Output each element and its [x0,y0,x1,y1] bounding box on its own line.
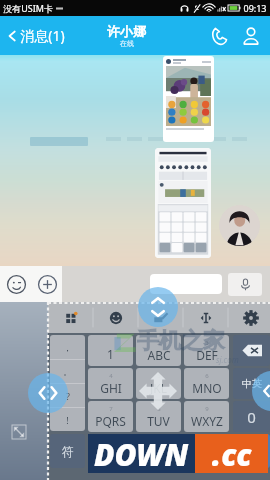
staticText: sj.com [216,354,239,365]
staticText: 1 [107,346,114,362]
staticText: 消息(1) [20,26,65,45]
button[interactable]: Send [233,434,270,468]
staticText: ABC [147,347,171,363]
button[interactable]: 8 [136,401,181,432]
button[interactable] [150,274,222,294]
button[interactable]: 7 [88,401,133,432]
staticText: ? [66,390,70,402]
button[interactable]: Scroll up and down [138,287,178,327]
button[interactable]: 3 [184,335,229,366]
button[interactable]: Apps [48,302,93,333]
button[interactable]: Cursor pad [183,302,228,333]
button[interactable]: Call [206,23,232,49]
button[interactable]: 符 [50,434,85,468]
staticText: 符 [62,444,74,459]
staticText: 0 [247,407,256,427]
staticText: 中英 [242,377,262,390]
staticText: 3 [205,339,209,347]
staticText: PQRS [95,413,126,429]
staticText: DOWN [94,434,189,473]
button[interactable] [163,56,214,142]
staticText: 没有USIM卡 [3,2,53,14]
button[interactable]: Move cursor left or right [28,373,68,413]
button[interactable]: Contact profile [238,23,264,49]
staticText: TUV [147,413,170,429]
staticText: 4 [109,372,113,380]
button[interactable]: Move keyboard [139,372,177,410]
button[interactable]: Emoji [5,273,27,295]
button[interactable]: 4 [88,368,133,399]
staticText: GHI [100,380,122,396]
button[interactable]: ， [50,335,85,431]
button[interactable]: 0 [233,401,270,432]
button[interactable]: 中英 [233,368,270,399]
button[interactable]: 2 [136,335,181,366]
button[interactable]: Previous [252,371,270,411]
button[interactable]: Emoji [93,302,138,333]
button[interactable]: 9 [184,401,229,432]
staticText: WXYZ [191,413,223,429]
staticText: 5 [157,372,161,380]
button[interactable]: 5 [136,368,181,399]
button[interactable]: Space [136,434,181,468]
staticText: 7 [109,405,113,413]
button[interactable]: Enter [184,434,229,468]
button[interactable]: 1 [88,335,133,366]
staticText: 。 [63,366,72,377]
staticText: 12# [100,443,122,459]
button[interactable]: 12# [88,434,133,468]
staticText: .cc [212,434,252,473]
staticText: 8 [157,405,161,413]
button[interactable]: Voice message [228,273,262,296]
button[interactable]: Contact avatar [219,205,260,246]
staticText: 2 [157,339,161,347]
staticText: MNO [192,380,222,396]
button[interactable]: Add attachment [36,273,58,295]
staticText: DEF [196,347,218,363]
button[interactable]: 消息(1) [3,20,67,51]
staticText: ， [63,342,72,353]
button[interactable]: Settings [228,302,270,333]
button[interactable]: Backspace [233,335,270,366]
button[interactable]: Handwriting [138,302,183,333]
staticText: 09:13 [243,2,267,14]
staticText: 在线 [120,39,134,48]
staticText: 许小娜 [107,23,146,39]
button[interactable] [155,148,211,258]
staticText: 6 [205,372,209,380]
staticText: JKL [150,380,167,396]
staticText: 手机之家 [137,327,225,355]
staticText: 9 [205,405,209,413]
button[interactable]: 6 [184,368,229,399]
staticText: ! [66,414,69,426]
